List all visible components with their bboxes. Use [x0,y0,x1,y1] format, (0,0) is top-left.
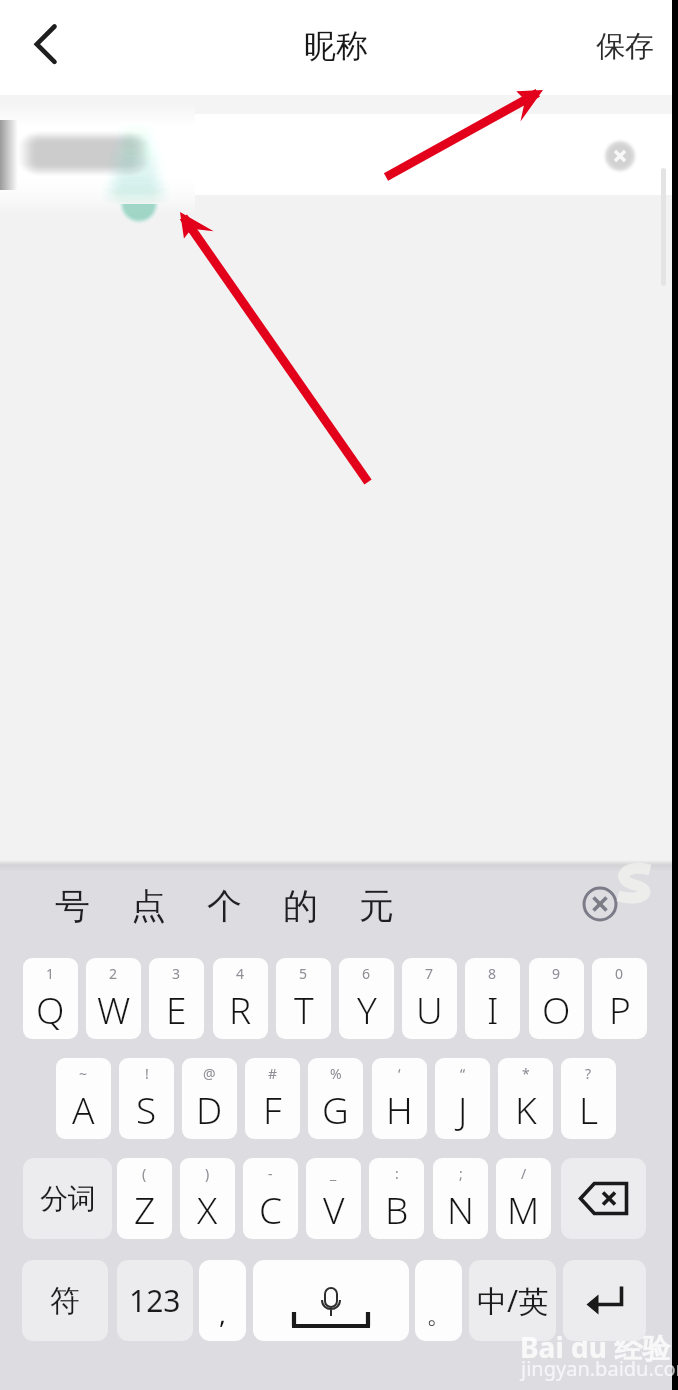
staticText: 4 [236,964,245,983]
button[interactable]: ! [119,1058,174,1139]
staticText: P [609,984,631,1034]
button[interactable]: 中/英 [469,1260,556,1341]
staticText: 9 [552,964,561,983]
staticText: E [166,984,187,1034]
button[interactable]: 分词 [23,1158,112,1239]
button[interactable]: 1 [23,958,78,1039]
button[interactable]: 个 [187,874,261,938]
staticText: F [263,1084,282,1134]
button[interactable]: 元 [339,874,413,938]
button[interactable]: Space [253,1260,409,1341]
staticText: # [268,1064,278,1083]
button[interactable]: 号 [35,874,109,938]
button[interactable]: # [245,1058,300,1139]
button[interactable]: 的 [263,874,337,938]
button[interactable]: 4 [213,958,268,1039]
staticText: % [330,1064,342,1083]
button[interactable]: - [243,1158,298,1239]
staticText: : [395,1164,399,1183]
staticText: 7 [425,964,434,983]
staticText: 个 [207,884,242,928]
button[interactable]: 8 [465,958,520,1039]
staticText: O [542,984,571,1034]
button[interactable]: _ [306,1158,361,1239]
staticText: ) [205,1164,210,1183]
staticText: ! [145,1064,149,1083]
staticText: * [522,1064,530,1083]
button[interactable]: Clear text [598,134,642,178]
button[interactable]: 。 [415,1260,462,1341]
button[interactable]: * [498,1058,553,1139]
staticText: @ [203,1064,216,1083]
button[interactable]: Backspace [561,1158,646,1239]
staticText: H [386,1084,413,1134]
staticText: 点 [131,884,166,928]
staticText: ~ [79,1064,88,1083]
button[interactable]: ‘ [372,1058,427,1139]
staticText: J [458,1084,468,1134]
staticText: Bai du 经验 [520,1328,671,1366]
staticText: , [219,1296,226,1331]
staticText: U [416,984,443,1034]
button[interactable]: @ [182,1058,237,1139]
staticText: 号 [55,884,90,928]
staticText: 中/英 [477,1280,549,1321]
staticText: _ [330,1164,337,1183]
button[interactable]: 6 [339,958,394,1039]
staticText: N [447,1184,474,1234]
staticText: 8 [488,964,497,983]
staticText: ? [585,1064,592,1083]
staticText: 0 [615,964,624,983]
button[interactable]: 保存 [586,14,664,78]
staticText: - [268,1164,273,1183]
button[interactable]: 符 [22,1260,108,1341]
staticText: T [294,984,314,1034]
staticText: 元 [359,884,394,928]
staticText: C [259,1184,283,1234]
staticText: 2 [109,964,118,983]
button[interactable]: / [496,1158,551,1239]
staticText: M [507,1184,540,1234]
button[interactable]: 7 [402,958,457,1039]
staticText: 昵称 [304,26,368,66]
staticText: V [323,1184,345,1234]
button[interactable]: : [369,1158,424,1239]
staticText: ‘ [398,1064,401,1083]
button[interactable]: Back [18,17,74,77]
button[interactable]: ; [433,1158,488,1239]
button[interactable]: “ [435,1058,490,1139]
button[interactable]: 3 [149,958,204,1039]
staticText: W [97,984,131,1034]
staticText: X [197,1184,218,1234]
staticText: Q [36,984,65,1034]
button[interactable]: ~ [56,1058,111,1139]
staticText: jingyan.baidu.com [521,1355,678,1382]
button[interactable]: Close keyboard [578,882,622,926]
staticText: / [521,1164,527,1183]
button[interactable]: ( [117,1158,172,1239]
button[interactable]: Enter [563,1260,646,1341]
staticText: 1 [46,964,55,983]
button[interactable]: 5 [276,958,331,1039]
staticText: L [579,1084,599,1134]
staticText: R [229,984,252,1034]
staticText: 符 [50,1282,80,1320]
button[interactable]: 2 [86,958,141,1039]
button[interactable]: 123 [117,1260,193,1341]
staticText: Z [134,1184,156,1234]
button[interactable]: % [308,1058,363,1139]
button[interactable]: 0 [592,958,647,1039]
staticText: Y [357,984,377,1034]
staticText: 5 [299,964,308,983]
button[interactable]: ? [561,1058,616,1139]
button[interactable]: 9 [529,958,584,1039]
button[interactable]: 点 [111,874,185,938]
staticText: 123 [129,1280,181,1321]
staticText: G [322,1084,349,1134]
button[interactable]: ) [180,1158,235,1239]
staticText: 。 [426,1298,452,1331]
button[interactable]: , [199,1260,246,1341]
staticText: ( [142,1164,147,1183]
staticText: 分词 [40,1181,96,1216]
staticText: I [487,984,499,1034]
